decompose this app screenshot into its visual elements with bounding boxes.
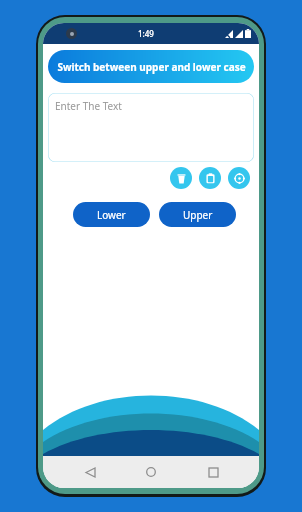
staticText: Enter The Text (55, 99, 122, 113)
staticText: 1:49 (138, 28, 154, 39)
button[interactable]: Share text (228, 167, 250, 189)
staticText: Switch between upper and lower case (57, 60, 246, 74)
button[interactable]: Switch between upper and lower case (48, 50, 254, 83)
button[interactable]: Enter The Text (48, 93, 254, 162)
button[interactable]: Lower (73, 202, 150, 227)
staticText: Upper (183, 208, 213, 222)
button[interactable]: Home (136, 457, 166, 487)
button[interactable]: Clear text (170, 167, 192, 189)
staticText: Lower (97, 208, 126, 222)
button[interactable]: Copy text (199, 167, 221, 189)
button[interactable]: Upper (159, 202, 236, 227)
button[interactable]: Back (75, 457, 105, 487)
button[interactable]: Recent apps (198, 457, 228, 487)
